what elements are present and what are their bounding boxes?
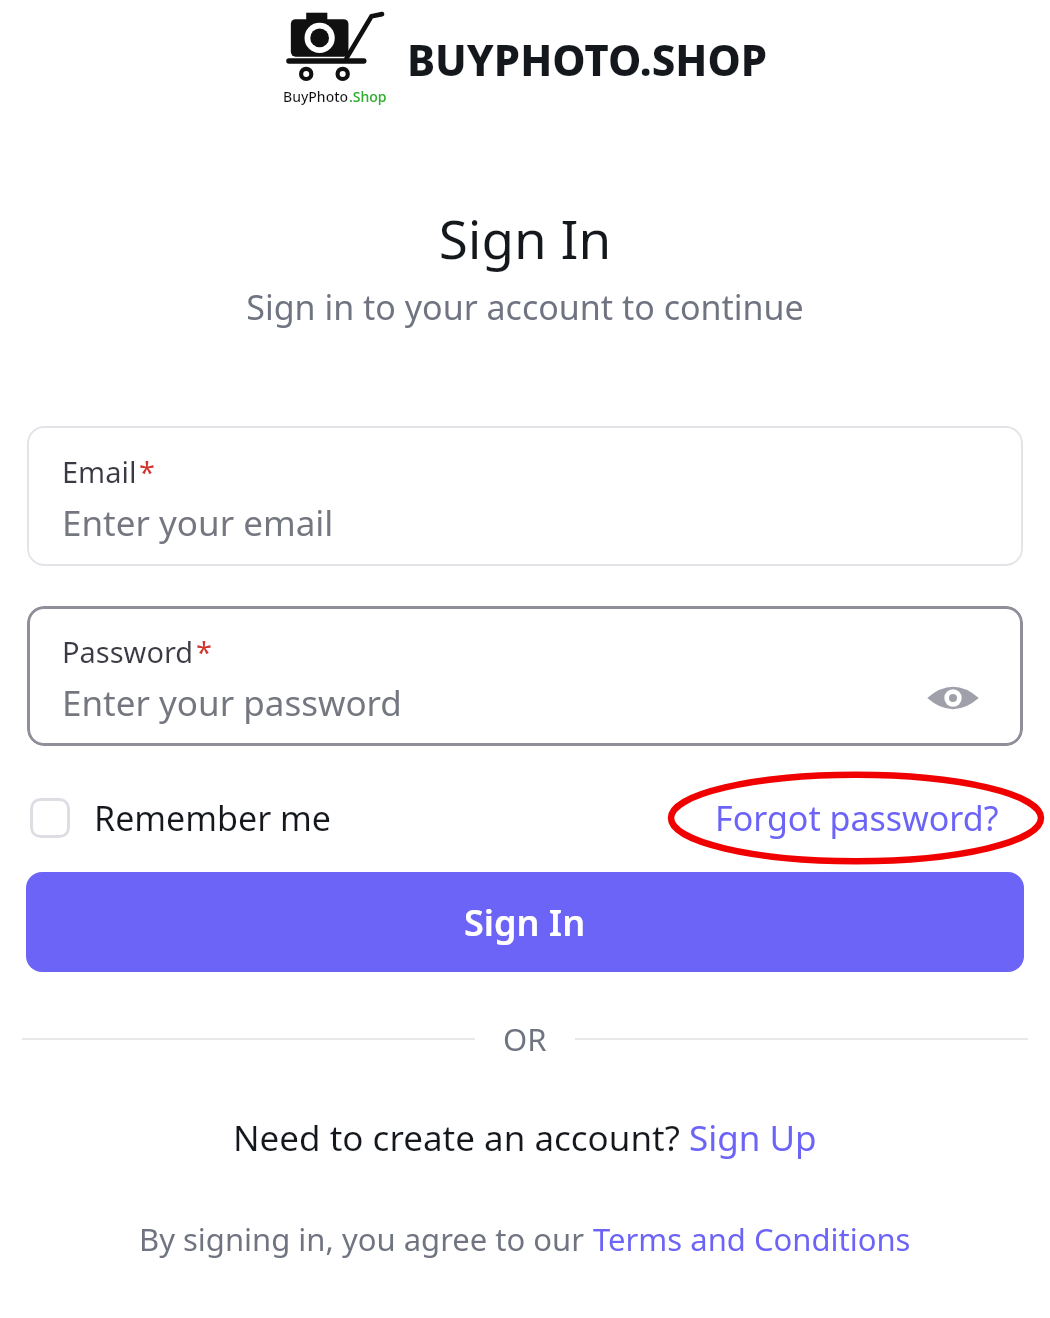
button[interactable]: Show password <box>923 668 983 728</box>
button[interactable]: Forgot password? <box>668 770 1046 866</box>
staticText: Sign In <box>0 202 1050 274</box>
staticText: Sign Up <box>689 1114 817 1162</box>
staticText: Sign in to your account to continue <box>0 284 1050 330</box>
staticText: .Shop <box>349 87 387 106</box>
button[interactable]: Email <box>27 426 1023 566</box>
button[interactable]: Remember me <box>30 795 332 841</box>
staticText: * <box>196 632 212 671</box>
button[interactable]: Terms and Conditions <box>593 1218 911 1260</box>
staticText: * <box>139 452 155 491</box>
staticText: Need to create an account? <box>233 1114 689 1162</box>
staticText: OR <box>503 1018 547 1060</box>
staticText: Remember me <box>94 795 332 841</box>
button[interactable]: Sign In <box>26 872 1024 972</box>
staticText: Email <box>62 452 137 491</box>
staticText: Password <box>62 632 194 671</box>
staticText: Sign In <box>464 898 586 947</box>
staticText: Enter your email <box>62 499 334 547</box>
staticText: BuyPhoto <box>283 87 349 106</box>
staticText: By signing in, you agree to our <box>139 1218 593 1260</box>
staticText: Terms and Conditions <box>593 1218 911 1260</box>
staticText: BUYPHOTO.SHOP <box>407 31 768 88</box>
button[interactable]: Password <box>27 606 1023 746</box>
staticText: Enter your password <box>62 679 402 727</box>
staticText: Forgot password? <box>715 795 999 841</box>
button[interactable]: Sign Up <box>689 1114 817 1162</box>
